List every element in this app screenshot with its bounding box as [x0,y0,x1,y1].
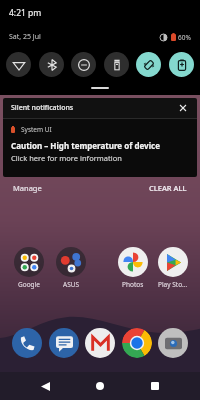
button[interactable]: Do not disturb [71,52,96,77]
button[interactable]: Recents [144,375,166,397]
button[interactable]: Camera [156,326,190,360]
button[interactable]: Back [34,375,56,397]
button[interactable]: Manage [11,181,44,195]
button[interactable]: Chrome [120,326,154,360]
staticText: CLEAR ALL [149,183,187,193]
button[interactable]: System UI [3,119,197,177]
button[interactable]: Wi-Fi [6,52,31,77]
button[interactable]: Silent notifications [3,98,197,118]
button[interactable]: Play Sto… [154,247,192,289]
staticText: System UI [21,125,52,134]
button[interactable]: Phone [10,326,44,360]
staticText: Manage [13,183,42,193]
staticText: Silent notifications [11,103,74,113]
button[interactable]: Bluetooth [39,52,64,77]
staticText: Caution – High temperature of device [11,140,160,151]
button[interactable]: Battery saver [169,52,194,77]
staticText: ASUS [63,280,80,289]
staticText: Sat, 25 Jul [9,32,41,42]
staticText: 4:21 pm [9,7,42,19]
staticText: 60% [178,33,191,42]
staticText: Click here for more information [11,153,122,163]
staticText: Play Sto… [158,280,188,289]
button[interactable]: Photos [112,247,154,289]
button[interactable]: Messages [47,326,81,360]
staticText: Photos [122,280,144,289]
staticText: Google [18,280,40,289]
button[interactable]: Dismiss silent notifications [177,102,189,114]
button[interactable]: Google [8,247,50,289]
button[interactable]: Gmail [83,326,117,360]
button[interactable]: Flashlight [104,52,129,77]
button[interactable]: Auto rotate [136,52,161,77]
button[interactable]: CLEAR ALL [147,181,189,195]
button[interactable]: Home [89,375,111,397]
button[interactable]: ASUS [50,247,92,289]
